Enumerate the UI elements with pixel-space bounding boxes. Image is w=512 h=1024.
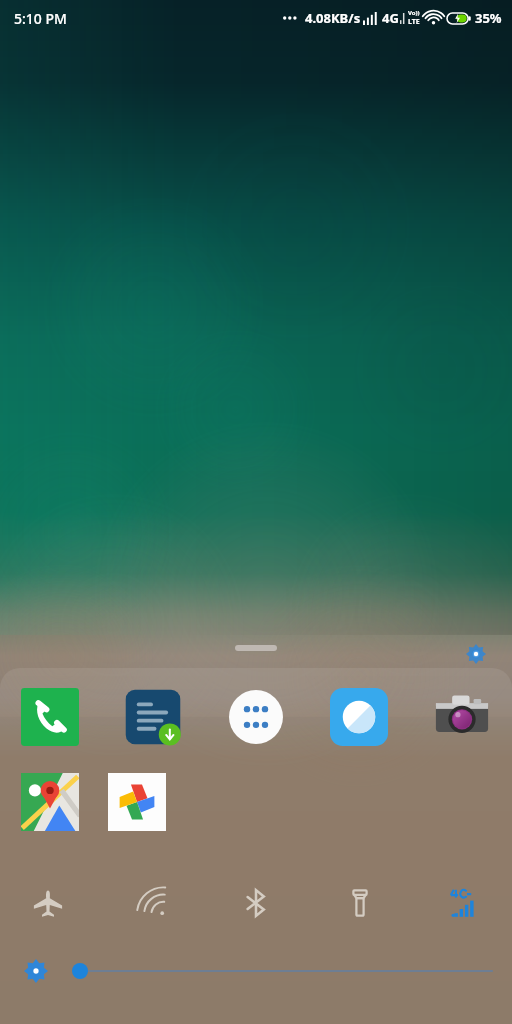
button[interactable]: Airplane mode bbox=[24, 879, 72, 927]
staticText: Vo)) bbox=[408, 9, 420, 17]
staticText: 5:10 PM bbox=[14, 9, 67, 28]
button[interactable]: Mobile data bbox=[440, 879, 488, 927]
other: Brightness bbox=[16, 951, 56, 991]
button[interactable]: Bluetooth bbox=[232, 879, 280, 927]
button[interactable]: Wi-Fi bbox=[128, 879, 176, 927]
button[interactable]: Messages bbox=[121, 685, 185, 749]
staticText: 4G bbox=[382, 9, 399, 27]
staticText: LTE bbox=[408, 17, 420, 27]
button[interactable]: Camera bbox=[430, 685, 494, 749]
button[interactable]: Photos bbox=[105, 770, 169, 834]
button[interactable]: Phone bbox=[18, 685, 82, 749]
staticText: 35% bbox=[475, 9, 502, 27]
button[interactable]: Maps bbox=[18, 770, 82, 834]
button[interactable]: All apps bbox=[224, 685, 288, 749]
button[interactable]: Edit shortcuts bbox=[462, 640, 490, 668]
button[interactable]: Flashlight bbox=[336, 879, 384, 927]
staticText: 4.08KB/s bbox=[305, 9, 361, 27]
button[interactable]: Browser bbox=[327, 685, 391, 749]
button[interactable]: Brightness bbox=[16, 946, 492, 996]
